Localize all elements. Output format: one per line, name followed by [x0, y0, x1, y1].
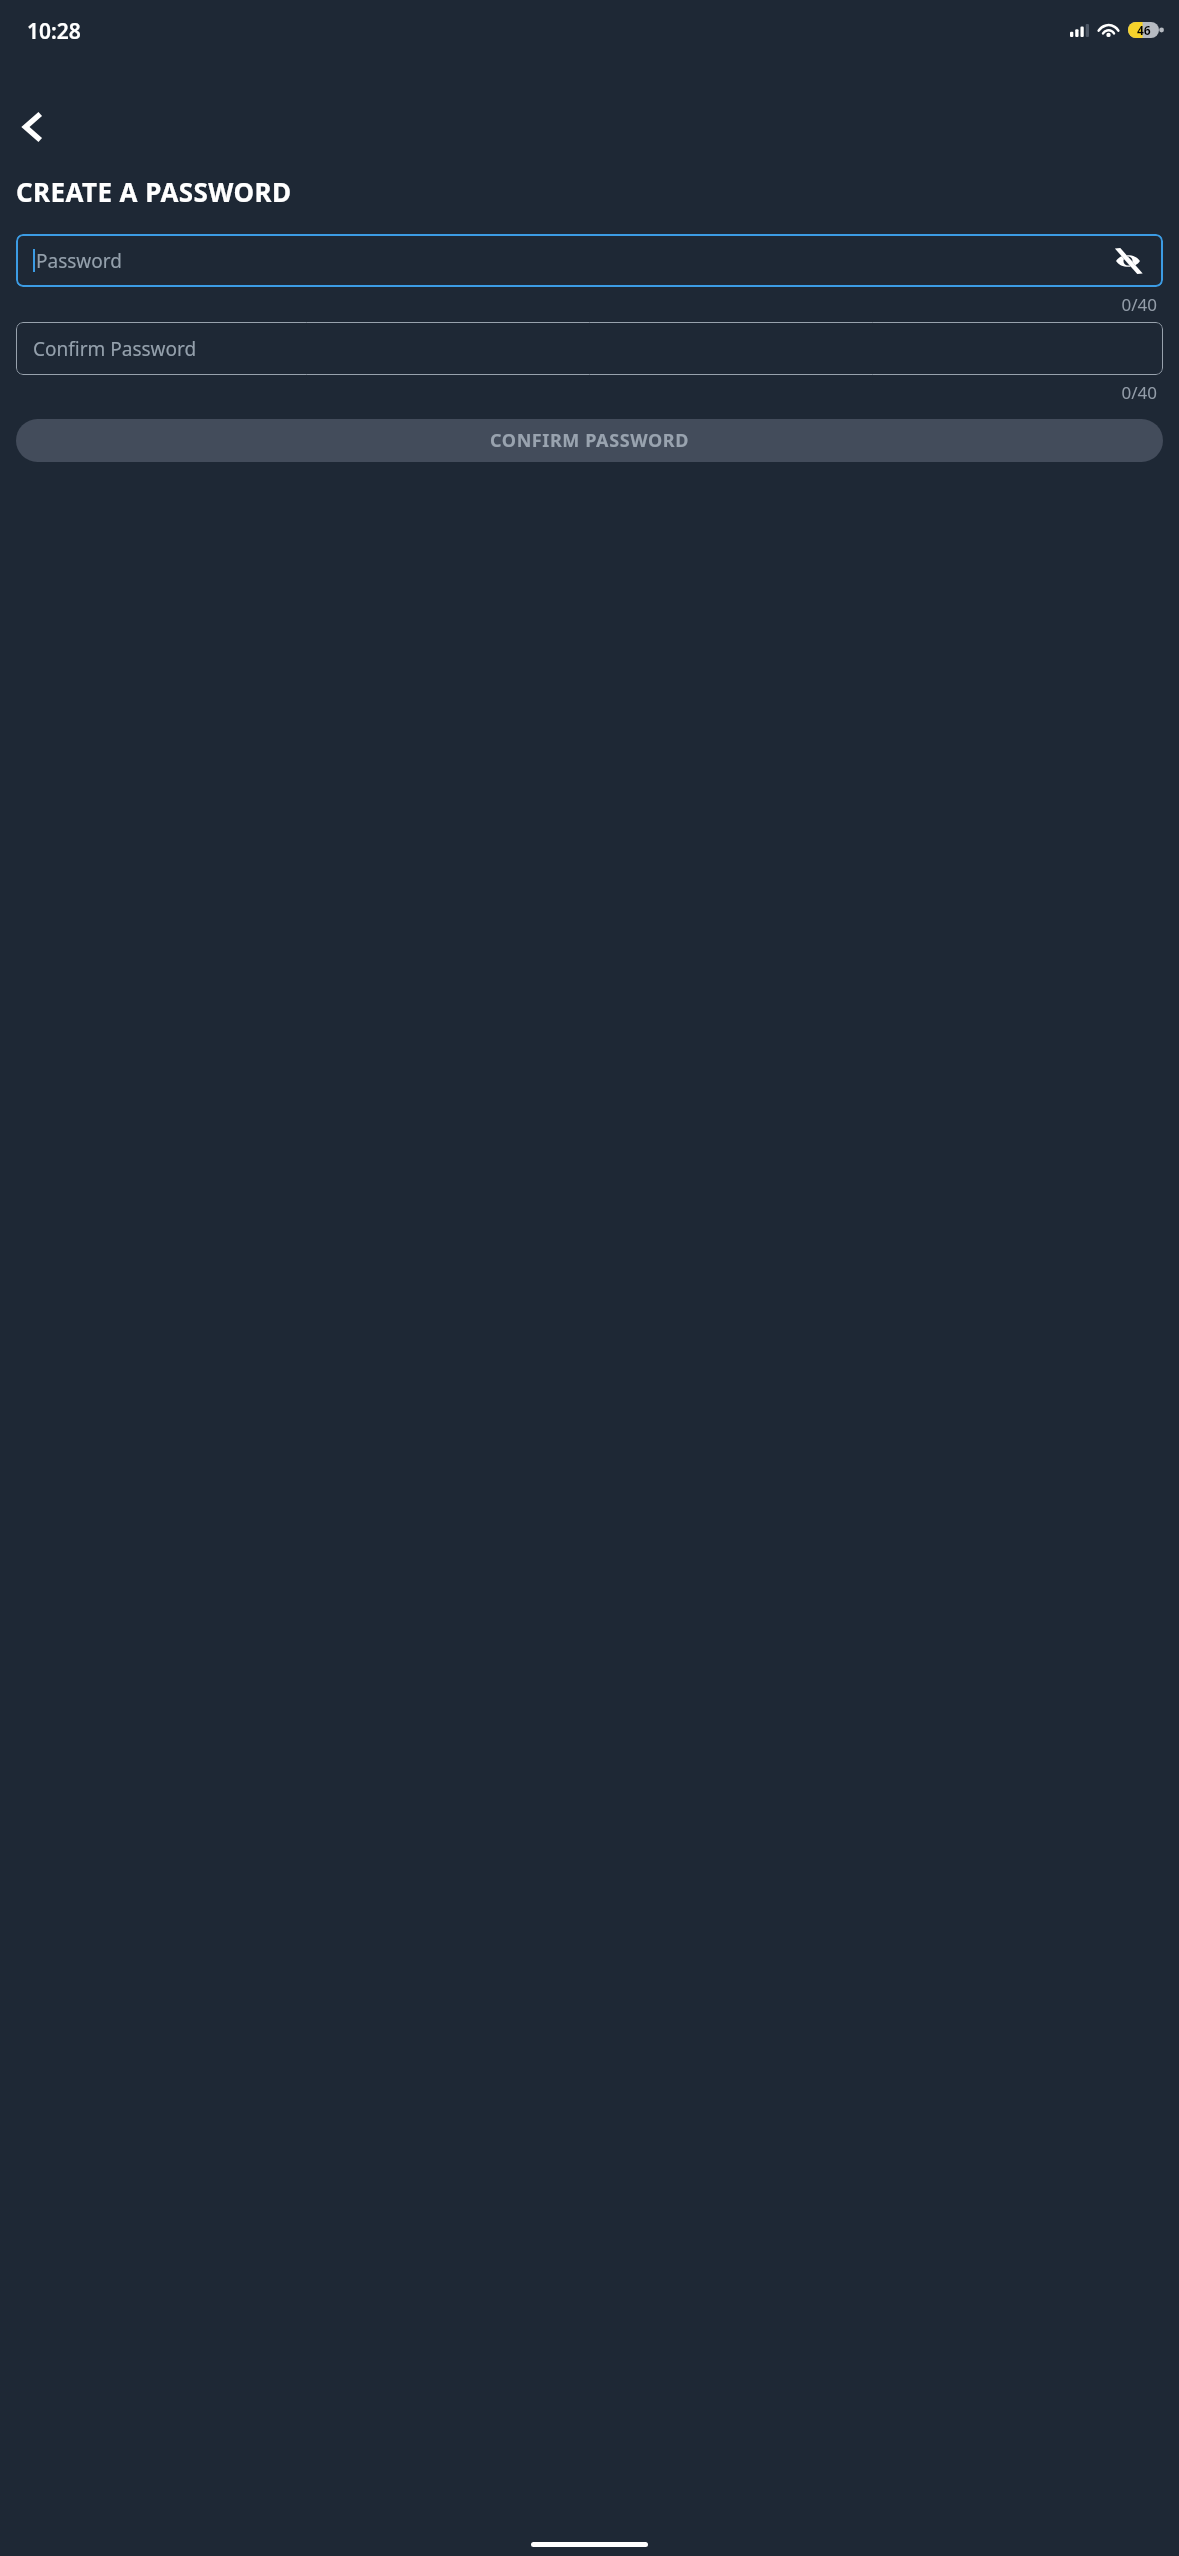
staticText: 46 [1137, 22, 1151, 38]
staticText: 10:28 [27, 17, 81, 46]
staticText: 0/40 [1121, 381, 1157, 404]
button[interactable]: Back [6, 100, 60, 154]
button[interactable]: Password [16, 234, 1163, 287]
staticText: Confirm Password [33, 336, 197, 362]
button[interactable]: Toggle password visibility [1111, 244, 1145, 278]
staticText: Password [36, 248, 122, 274]
button[interactable]: CONFIRM PASSWORD [16, 419, 1163, 462]
staticText: CONFIRM PASSWORD [490, 428, 690, 453]
staticText: CREATE A PASSWORD [16, 174, 292, 209]
staticText: 0/40 [1121, 293, 1157, 316]
button[interactable]: Confirm Password [16, 322, 1163, 375]
